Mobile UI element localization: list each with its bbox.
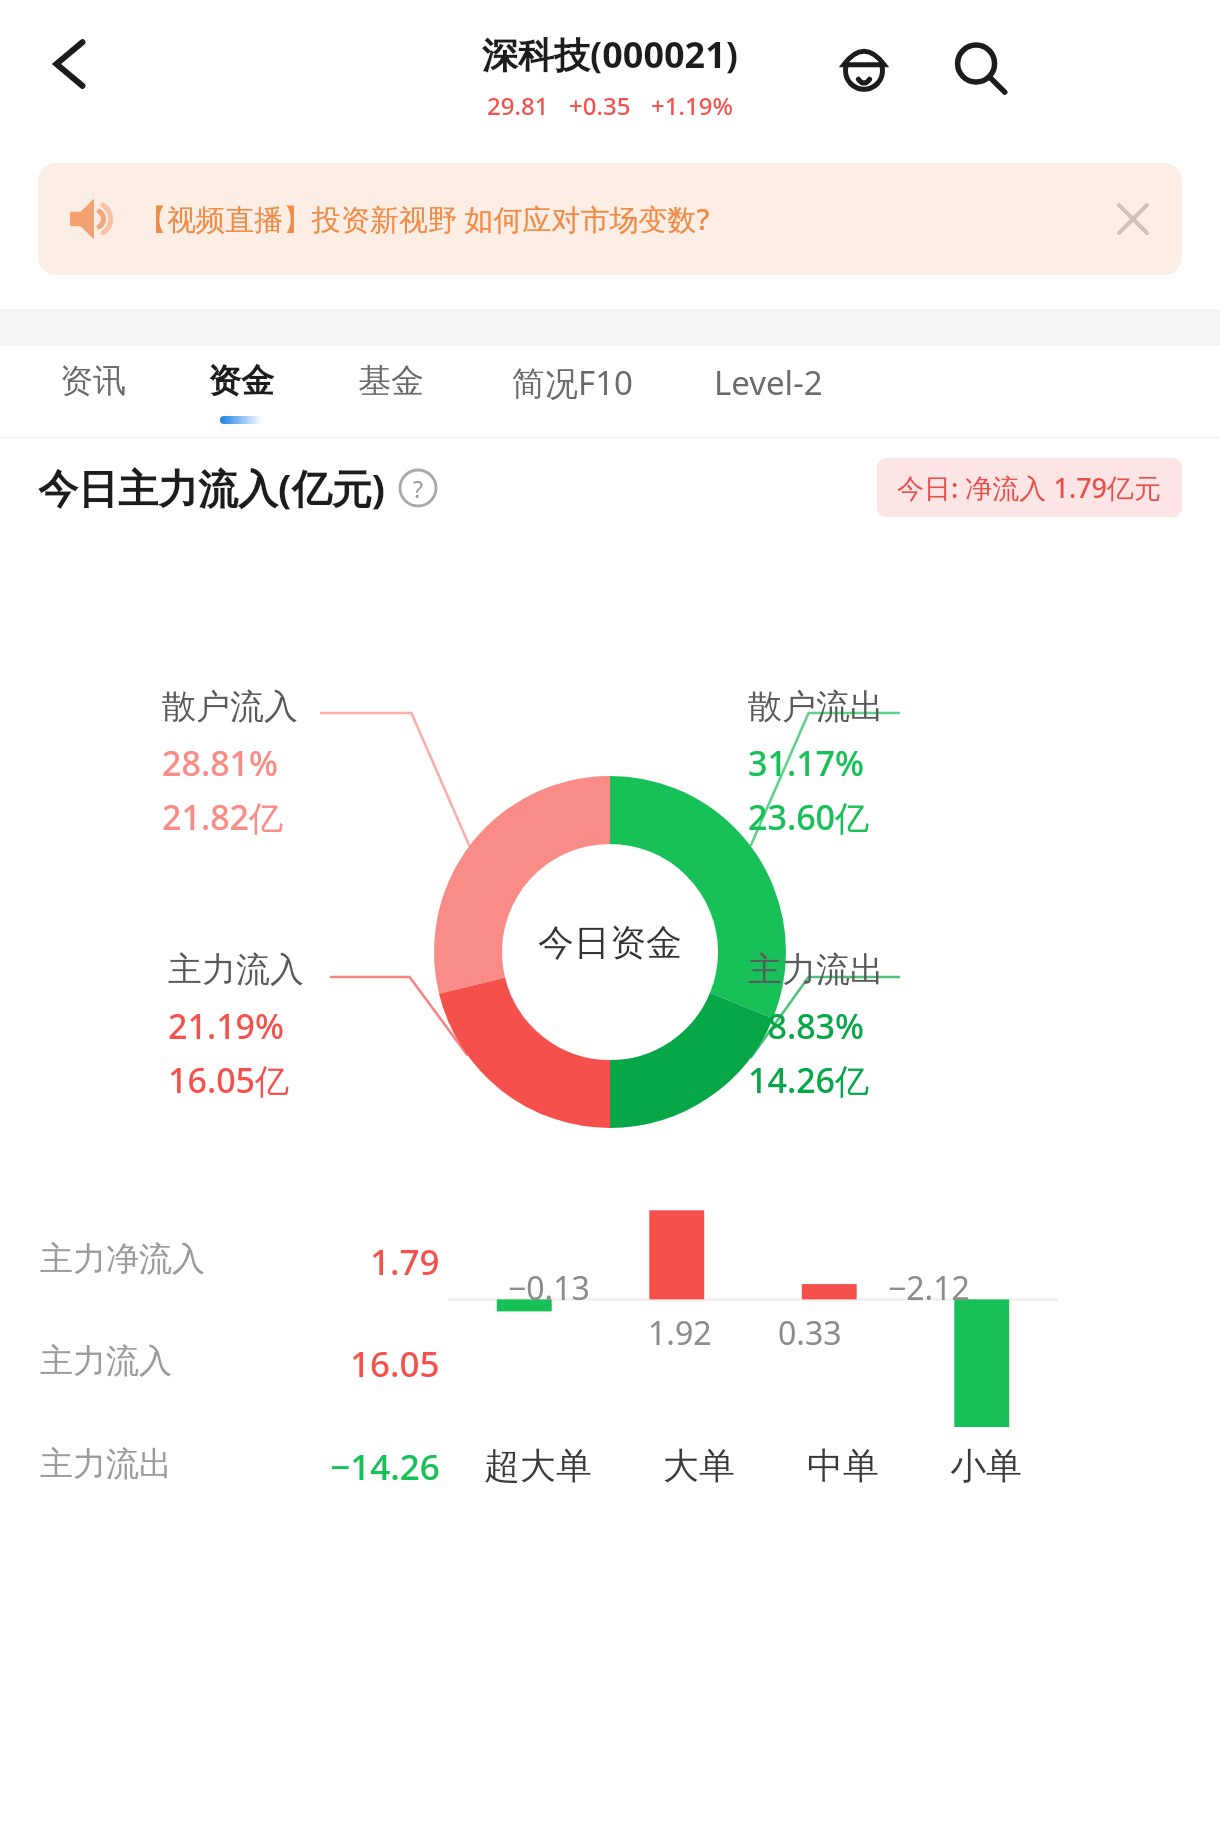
staticText: 16.05亿: [168, 1057, 290, 1103]
staticText: 0.33: [778, 1311, 842, 1355]
staticText: 散户流入: [162, 685, 298, 728]
staticText: 资金: [208, 360, 274, 402]
staticText: −0.13: [508, 1266, 590, 1310]
staticText: 今日主力流入(亿元): [38, 460, 386, 515]
staticText: 主力流出: [40, 1443, 172, 1485]
button[interactable]: Close banner: [1104, 190, 1162, 248]
staticText: 基金: [358, 360, 424, 402]
button[interactable]: 资金: [186, 346, 296, 438]
staticText: 今日资金: [538, 920, 682, 965]
staticText: 21.82亿: [162, 794, 284, 840]
button[interactable]: 基金: [336, 346, 446, 438]
staticText: 主力流入: [40, 1340, 172, 1382]
button[interactable]: Help: [394, 464, 442, 512]
staticText: 资讯: [60, 360, 126, 402]
staticText: 深科技(000021): [482, 30, 738, 79]
staticText: 1.79: [370, 1238, 440, 1286]
button[interactable]: Account: [824, 28, 904, 108]
staticText: 21.19%: [168, 1003, 285, 1049]
staticText: Level-2: [714, 360, 823, 405]
staticText: 31.17%: [748, 740, 865, 786]
staticText: 今日: 净流入 1.79亿元: [897, 469, 1162, 506]
staticText: 主力流出: [748, 948, 884, 991]
button[interactable]: Level-2: [698, 346, 838, 438]
staticText: 小单: [950, 1443, 1022, 1488]
staticText: 1.92: [648, 1311, 712, 1355]
staticText: 超大单: [484, 1443, 592, 1488]
staticText: 主力流入: [168, 948, 304, 991]
staticText: ?: [413, 473, 423, 504]
staticText: 29.81: [487, 89, 549, 122]
staticText: 简况F10: [512, 360, 633, 405]
staticText: 散户流出: [748, 685, 884, 728]
staticText: 【视频直播】投资新视野 如何应对市场变数?: [138, 199, 1104, 239]
staticText: 18.83%: [748, 1003, 865, 1049]
staticText: +0.35: [569, 89, 631, 122]
button[interactable]: 简况F10: [486, 346, 658, 438]
staticText: 23.60亿: [748, 794, 870, 840]
staticText: 大单: [663, 1443, 735, 1488]
button[interactable]: 【视频直播】投资新视野 如何应对市场变数?: [38, 163, 1182, 275]
staticText: 16.05: [350, 1340, 440, 1388]
staticText: 中单: [807, 1443, 879, 1488]
staticText: 14.26亿: [748, 1057, 870, 1103]
button[interactable]: 资讯: [40, 346, 146, 438]
staticText: 28.81%: [162, 740, 279, 786]
staticText: −2.12: [888, 1266, 970, 1310]
staticText: −14.26: [330, 1443, 440, 1491]
button[interactable]: 今日: 净流入 1.79亿元: [877, 458, 1182, 517]
button[interactable]: Back: [22, 22, 106, 106]
staticText: +1.19%: [651, 89, 733, 122]
button[interactable]: Search: [940, 28, 1020, 108]
staticText: 主力净流入: [40, 1238, 205, 1280]
